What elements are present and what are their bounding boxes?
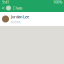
staticText: 9:41 xyxy=(2,0,9,5)
staticText: Jordan Lee xyxy=(11,14,29,19)
staticText: online xyxy=(11,20,21,24)
staticText: < xyxy=(1,4,4,12)
staticText: Chats xyxy=(12,5,22,11)
button[interactable]: Back xyxy=(1,4,4,12)
staticText: 100% xyxy=(53,0,62,5)
